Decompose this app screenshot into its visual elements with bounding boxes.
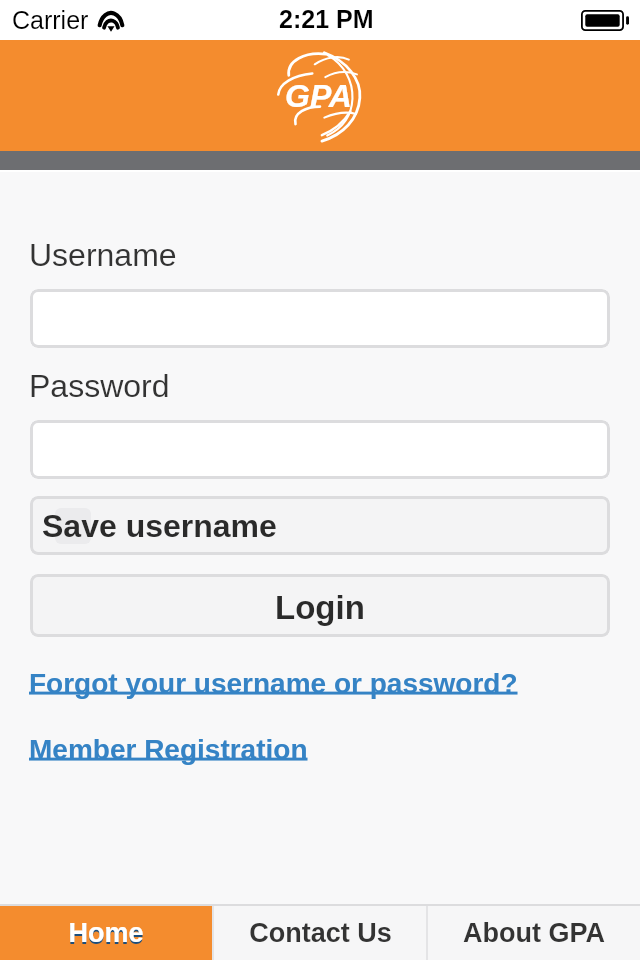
button[interactable]: Text field — [30, 289, 610, 348]
staticText: Login — [275, 589, 365, 626]
button[interactable]: Home — [0, 906, 212, 960]
staticText: About GPA — [463, 918, 605, 948]
button[interactable]: Contact Us — [214, 906, 426, 960]
staticText: Member Registration — [29, 734, 308, 765]
staticText: Contact Us — [249, 918, 392, 948]
staticText: Home — [68, 918, 144, 948]
staticText: Carrier — [12, 6, 89, 34]
staticText: Password — [29, 368, 170, 404]
button[interactable]: Login — [30, 574, 610, 637]
button[interactable]: Save username — [30, 496, 610, 555]
other: Wi-Fi — [98, 11, 124, 30]
staticText: Home — [68, 920, 144, 950]
button[interactable]: Member Registration — [29, 734, 308, 765]
staticText: Username — [29, 237, 177, 273]
button[interactable]: About GPA — [428, 906, 640, 960]
staticText: GPA — [285, 78, 352, 114]
button[interactable]: Forgot your username or password? — [29, 668, 518, 699]
staticText: Save username — [42, 508, 277, 544]
staticText: 2:21 PM — [279, 5, 374, 33]
staticText: Forgot your username or password? — [29, 668, 518, 699]
other: Battery full — [581, 10, 629, 31]
button[interactable]: Text field — [30, 420, 610, 479]
